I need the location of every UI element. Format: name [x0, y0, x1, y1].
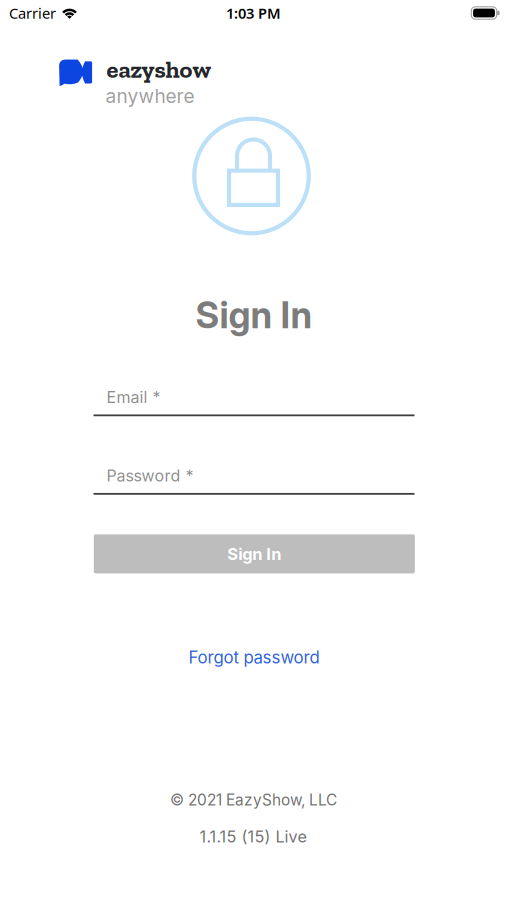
- staticText: Sign In: [195, 293, 312, 337]
- staticText: 1:03 PM: [226, 3, 281, 23]
- staticText: 1.1.15 (15) Live: [199, 827, 306, 846]
- staticText: Password *: [106, 466, 193, 485]
- staticText: Carrier: [9, 3, 56, 23]
- staticText: © 2021 EazyShow, LLC: [170, 790, 337, 809]
- staticText: Email *: [106, 387, 160, 407]
- button[interactable]: Password *: [93, 466, 414, 495]
- button[interactable]: Email *: [93, 387, 414, 416]
- staticText: eazyshow: [106, 54, 211, 84]
- staticText: Sign In: [227, 544, 281, 564]
- button[interactable]: Forgot password: [180, 643, 327, 672]
- staticText: Forgot password: [188, 647, 319, 668]
- button[interactable]: Sign In: [94, 534, 415, 573]
- staticText: anywhere: [105, 84, 194, 107]
